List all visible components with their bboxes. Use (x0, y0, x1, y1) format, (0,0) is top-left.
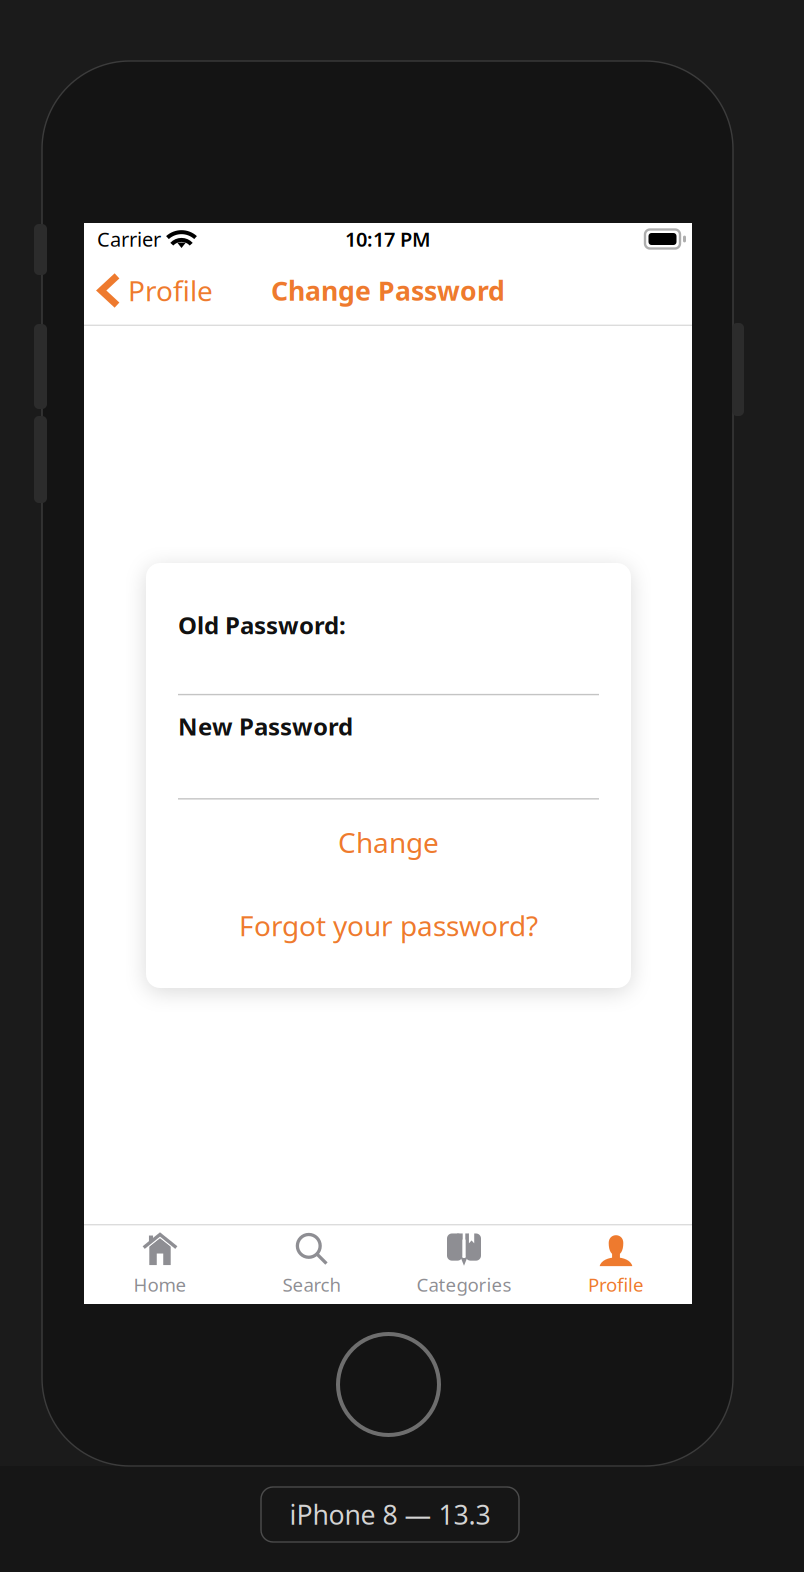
staticText: Change (338, 823, 439, 861)
staticText: Change Password (271, 273, 505, 308)
staticText: Home (133, 1272, 186, 1297)
staticText: Profile (588, 1272, 644, 1297)
staticText: Carrier (97, 226, 161, 252)
staticText: iPhone 8 — 13.3 (289, 1497, 490, 1532)
button[interactable]: Profile (84, 255, 225, 326)
staticText: Forgot your password? (239, 907, 538, 944)
staticText: Old Password: (178, 609, 346, 641)
button[interactable]: Home (84, 1224, 236, 1304)
staticText: Categories (416, 1272, 511, 1297)
button[interactable]: Categories (388, 1224, 540, 1304)
staticText: Profile (128, 272, 213, 309)
staticText: New Password (178, 710, 353, 742)
button[interactable]: Change (178, 823, 599, 861)
staticText: Search (282, 1272, 341, 1297)
staticText: 10:17 PM (345, 226, 431, 252)
button[interactable]: Forgot your password? (178, 907, 599, 944)
button[interactable]: Search (236, 1224, 388, 1304)
button[interactable]: Profile (540, 1224, 692, 1304)
